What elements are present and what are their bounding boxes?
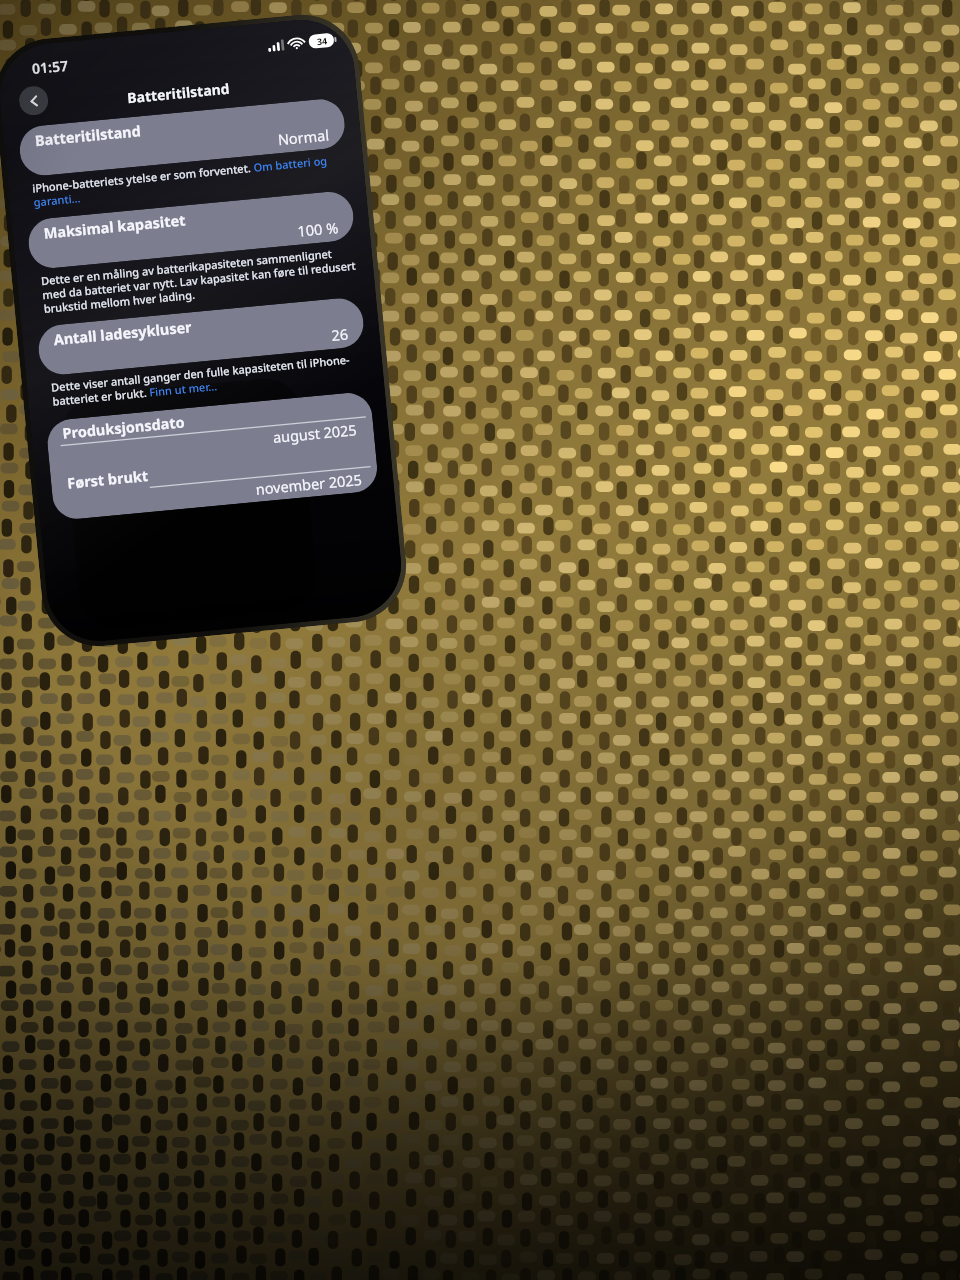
button[interactable]: Produksjonsdato: [45, 391, 375, 471]
staticText: november 2025: [255, 469, 363, 499]
button[interactable]: Antall ladesykluser: [36, 296, 366, 377]
staticText: august 2025: [272, 419, 358, 447]
staticText: Normal: [277, 124, 331, 149]
button[interactable]: Maksimal kapasitet: [26, 190, 356, 270]
staticText: Batteritilstand: [126, 79, 231, 107]
staticText: Dette viser antall ganger den fulle kapa…: [50, 350, 367, 409]
button[interactable]: Først brukt: [50, 441, 379, 521]
staticText: 26: [331, 324, 349, 345]
staticText: iPhone-batteriets ytelse er som forvente…: [32, 151, 348, 209]
staticText: Først brukt: [66, 465, 150, 493]
staticText: 01:57: [31, 56, 69, 78]
staticText: Antall ladesykluser: [53, 316, 193, 349]
button[interactable]: Batteritilstand: [18, 97, 347, 178]
staticText: Produksjonsdato: [62, 411, 186, 443]
button[interactable]: Back: [18, 85, 49, 116]
staticText: Dette er en måling av batterikapasiteten…: [40, 244, 358, 316]
staticText: 100 %: [297, 217, 339, 241]
staticText: 34: [316, 34, 328, 47]
staticText: Batteritilstand: [34, 120, 142, 150]
staticText: Maksimal kapasitet: [43, 209, 187, 243]
